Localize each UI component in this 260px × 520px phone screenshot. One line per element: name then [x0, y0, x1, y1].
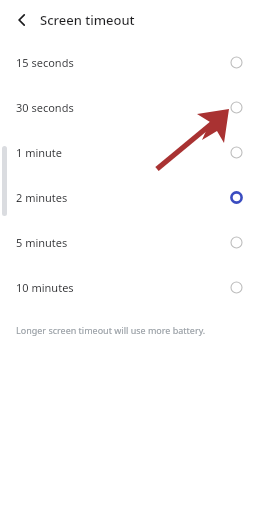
staticText: 30 seconds	[16, 100, 74, 115]
button[interactable]: 5 minutes	[0, 220, 260, 265]
staticText: Longer screen timeout will use more batt…	[16, 324, 206, 336]
staticText: 5 minutes	[16, 235, 68, 250]
button[interactable]: Back	[10, 8, 34, 32]
button[interactable]: 15 seconds	[0, 40, 260, 85]
staticText: Screen timeout	[40, 11, 135, 29]
staticText: 10 minutes	[16, 280, 74, 295]
staticText: 2 minutes	[16, 190, 68, 205]
staticText: 15 seconds	[16, 55, 74, 70]
staticText: 1 minute	[16, 145, 63, 160]
button[interactable]: 10 minutes	[0, 265, 260, 310]
button[interactable]: 30 seconds	[0, 85, 260, 130]
button[interactable]: 2 minutes	[0, 175, 260, 220]
button[interactable]: 1 minute	[0, 130, 260, 175]
